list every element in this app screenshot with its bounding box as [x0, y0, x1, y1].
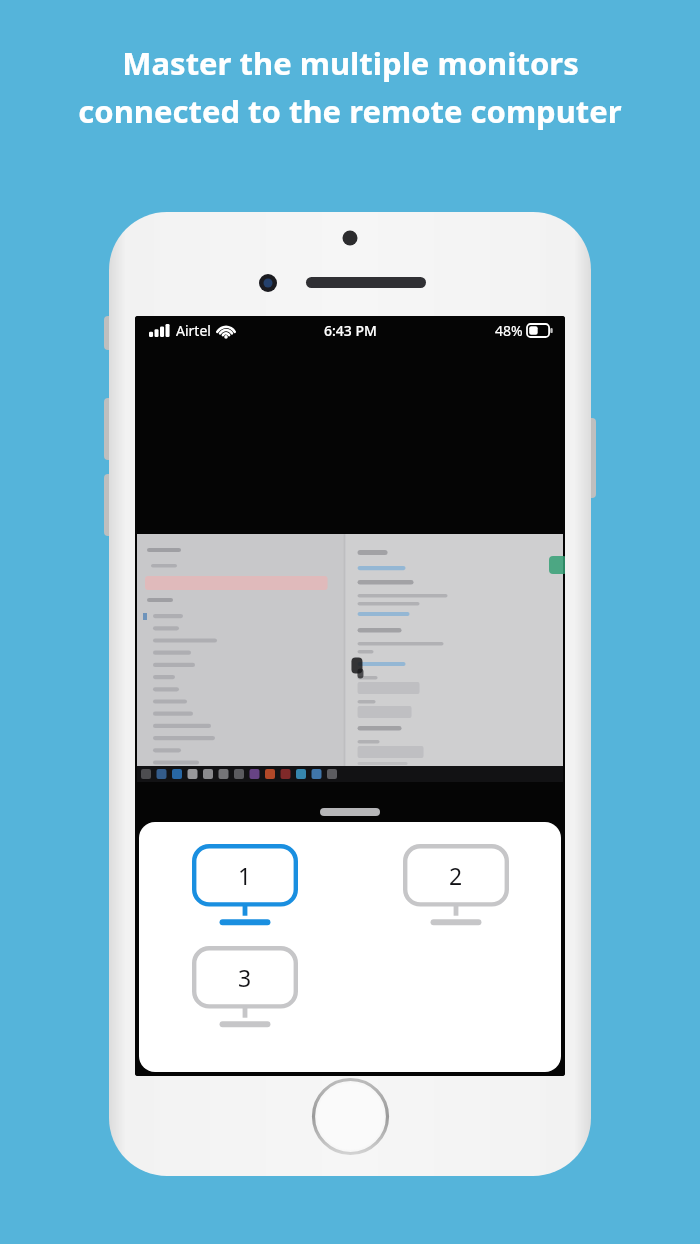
- button[interactable]: Monitor 3: [192, 946, 298, 1030]
- staticText: connected to the remote computer: [78, 90, 622, 132]
- staticText: Master the multiple monitors: [122, 42, 579, 84]
- staticText: Airtel: [176, 321, 211, 340]
- staticText: 2: [449, 860, 463, 891]
- staticText: 48%: [495, 321, 523, 340]
- button[interactable]: Home: [312, 1078, 389, 1155]
- staticText: 3: [238, 962, 252, 993]
- staticText: 1: [238, 860, 252, 891]
- button[interactable]: Monitor 2: [403, 844, 509, 928]
- button[interactable]: Monitor 1: [192, 844, 298, 928]
- staticText: 6:43 PM: [324, 321, 377, 340]
